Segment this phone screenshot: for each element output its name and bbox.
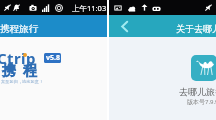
- staticText: Ctrip: [0, 48, 36, 68]
- staticText: 去哪儿旅行: [179, 86, 216, 97]
- staticText: v5.8: [46, 53, 60, 63]
- staticText: 携程: [0, 62, 41, 80]
- staticText: 上午11:03: [72, 3, 107, 13]
- button[interactable]: Back: [114, 15, 134, 37]
- staticText: 关于去哪儿旅行: [176, 23, 216, 34]
- staticText: 携程旅行: [0, 23, 38, 35]
- staticText: 宾至如归，流光如意！: [1, 79, 43, 84]
- staticText: 版本号7.9.9: [187, 98, 216, 106]
